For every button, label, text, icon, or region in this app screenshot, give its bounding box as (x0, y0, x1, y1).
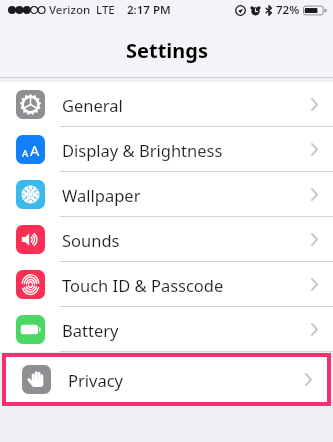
button[interactable]: Sounds (0, 217, 333, 262)
staticText: General (62, 94, 310, 116)
staticText: A (30, 140, 40, 160)
staticText: Privacy (68, 369, 304, 391)
other: Open Wallpaper (310, 187, 319, 202)
button[interactable]: Wallpaper (0, 172, 333, 217)
button[interactable]: A (0, 127, 333, 172)
staticText: 2:17 PM (127, 2, 171, 18)
staticText: LTE (96, 2, 115, 18)
other: Open General (310, 97, 319, 112)
other: Open Battery (310, 322, 319, 337)
staticText: Sounds (62, 229, 310, 251)
staticText: Touch ID & Passcode (62, 274, 310, 296)
staticText: 72% (276, 2, 300, 18)
other: Open Sounds (310, 232, 319, 247)
staticText: A (22, 147, 29, 160)
other: Open Privacy (304, 372, 313, 387)
staticText: Verizon (49, 2, 91, 18)
button[interactable]: Battery (0, 307, 333, 352)
button[interactable]: Touch ID & Passcode (0, 262, 333, 307)
staticText: Display & Brightness (62, 139, 310, 161)
staticText: Settings (126, 37, 208, 64)
staticText: Wallpaper (62, 184, 310, 206)
other: Open Touch ID & Passcode (310, 277, 319, 292)
button[interactable]: General (0, 82, 333, 127)
staticText: Battery (62, 319, 310, 341)
other: Open Display & Brightness (310, 142, 319, 157)
button[interactable]: Privacy (6, 357, 327, 402)
